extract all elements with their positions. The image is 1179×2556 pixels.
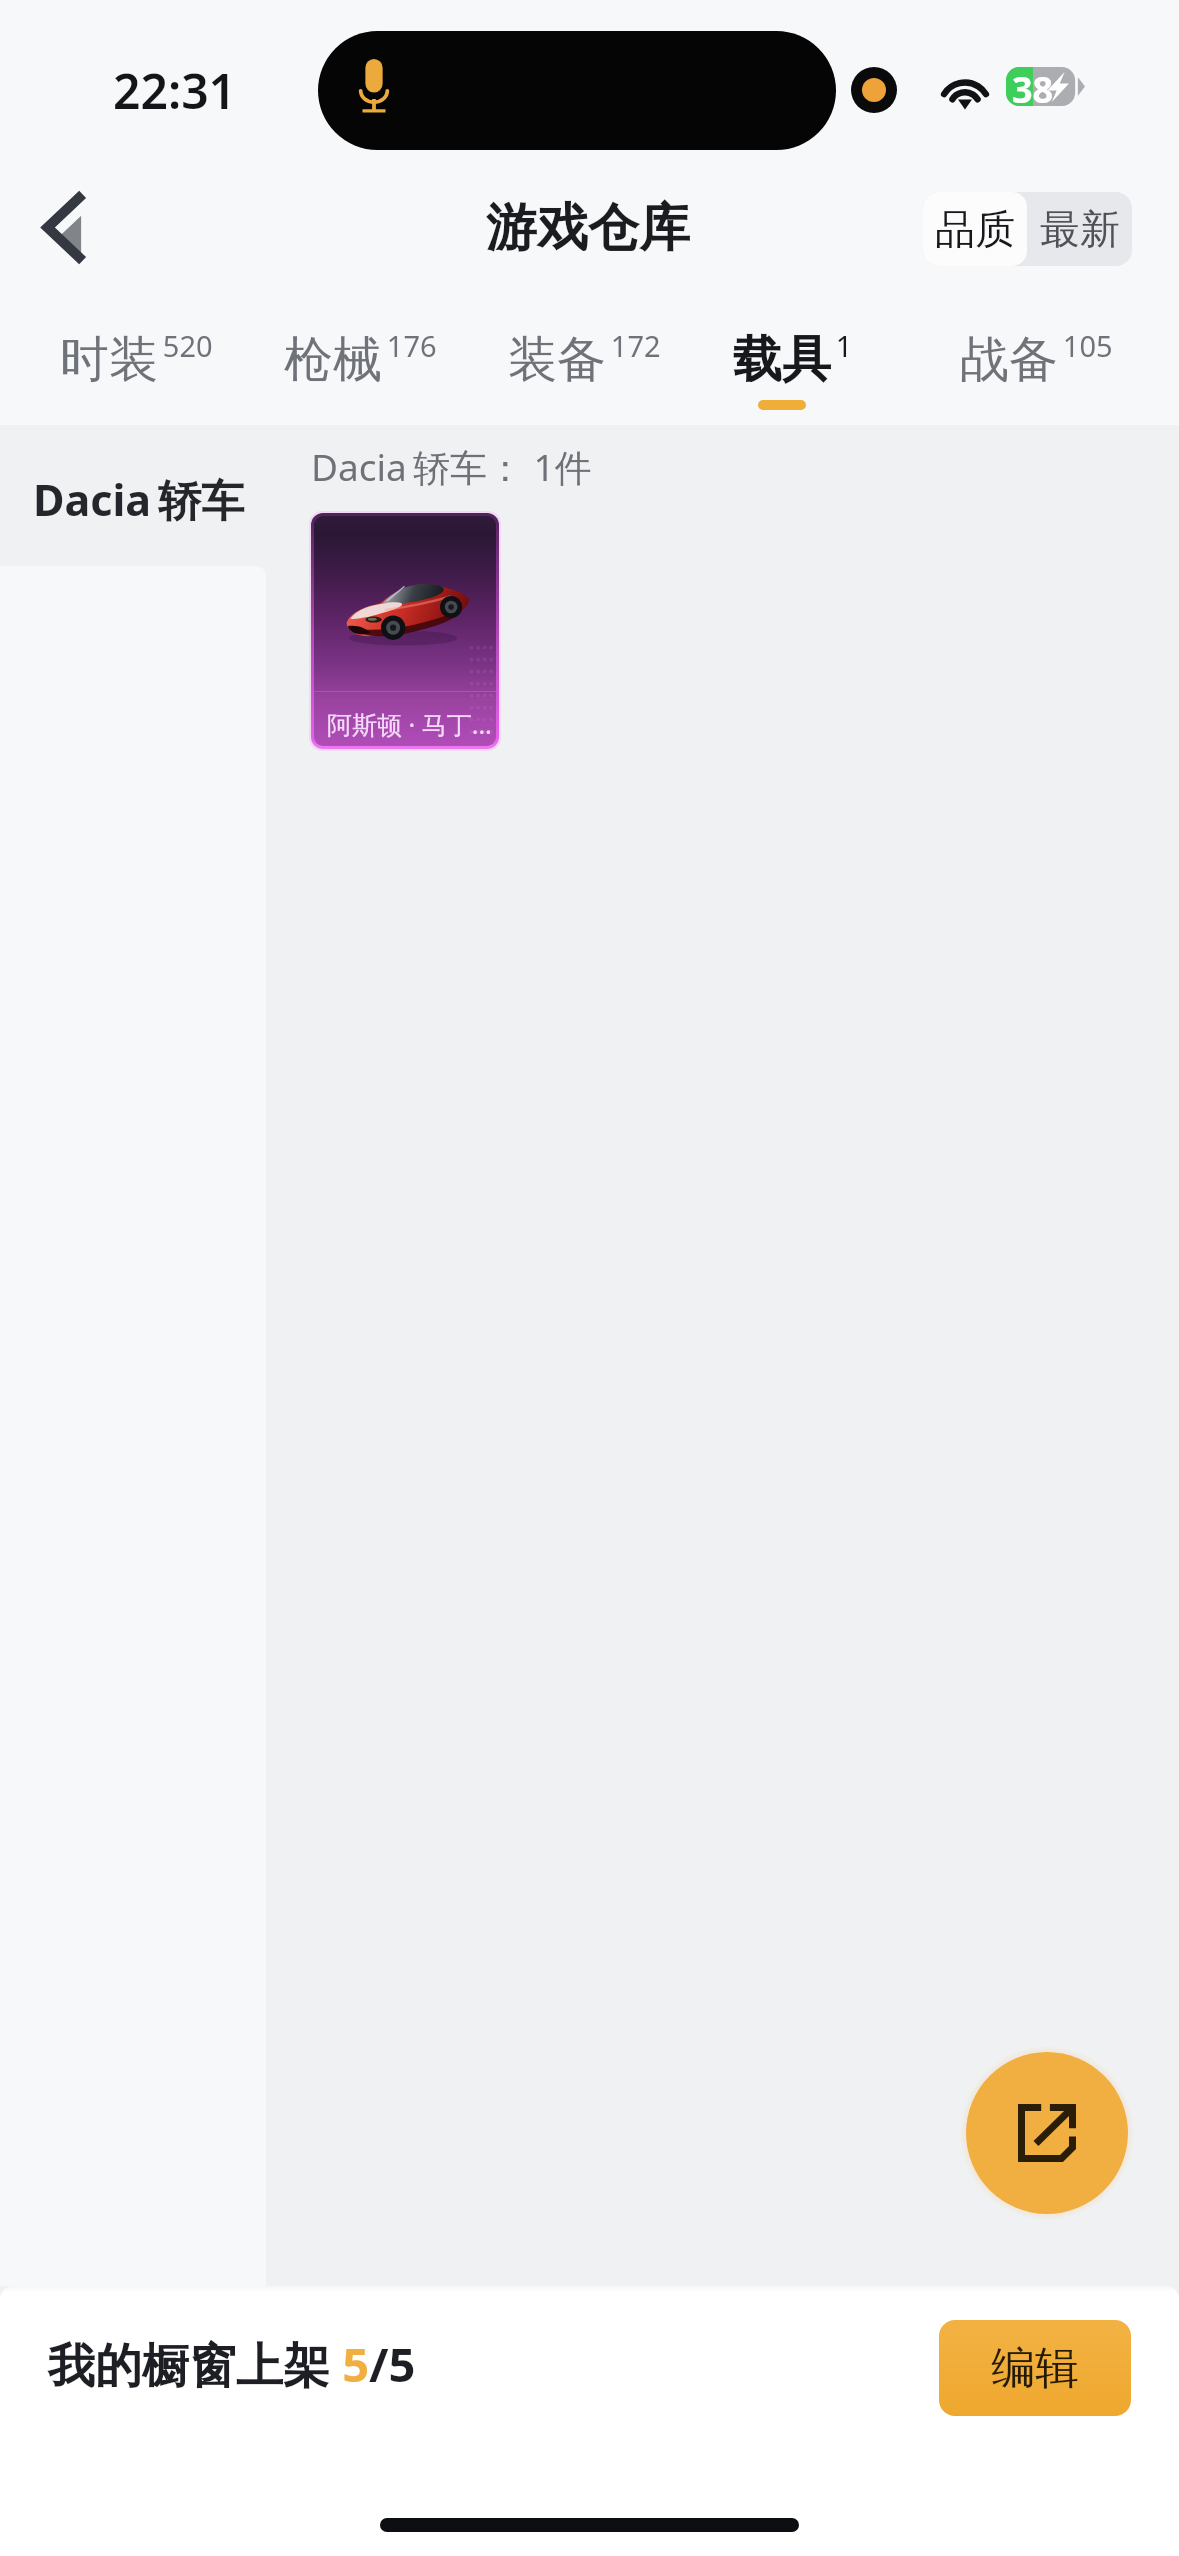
staticText: 38 <box>1012 65 1054 104</box>
button[interactable]: 最新 <box>1027 192 1132 266</box>
button[interactable]: 编辑 <box>939 2320 1131 2416</box>
staticText: 载具 1 <box>733 326 853 390</box>
button[interactable]: 品质 <box>923 192 1027 266</box>
staticText: 战备 105 <box>960 326 1113 390</box>
button[interactable]: 装备 172 <box>508 285 661 425</box>
button[interactable]: 返回 <box>14 170 114 285</box>
button[interactable]: 载具 1 <box>733 285 853 425</box>
button[interactable]: 枪械 176 <box>284 285 437 425</box>
button[interactable]: 时装 520 <box>60 285 213 425</box>
staticText: 我的橱窗上架 5/5 <box>48 2332 416 2396</box>
staticText: 编辑 <box>991 2341 1079 2396</box>
staticText: 游戏仓库 <box>486 196 690 260</box>
staticText: 品质 <box>935 204 1015 254</box>
staticText: 阿斯顿 · 马丁... <box>327 707 492 741</box>
button[interactable]: 阿斯顿 · 马丁... <box>311 513 499 749</box>
staticText: 时装 520 <box>60 326 213 390</box>
button[interactable]: 分享 <box>966 2052 1128 2214</box>
button[interactable]: Dacia 轿车 <box>0 425 266 566</box>
button[interactable]: 战备 105 <box>960 285 1113 425</box>
staticText: Dacia 轿车： 1件 <box>311 441 592 492</box>
staticText: 装备 172 <box>508 326 661 390</box>
staticText: 最新 <box>1040 204 1120 254</box>
staticText: 22:31 <box>113 58 237 123</box>
staticText: Dacia 轿车 <box>33 470 245 529</box>
staticText: 枪械 176 <box>284 326 437 390</box>
